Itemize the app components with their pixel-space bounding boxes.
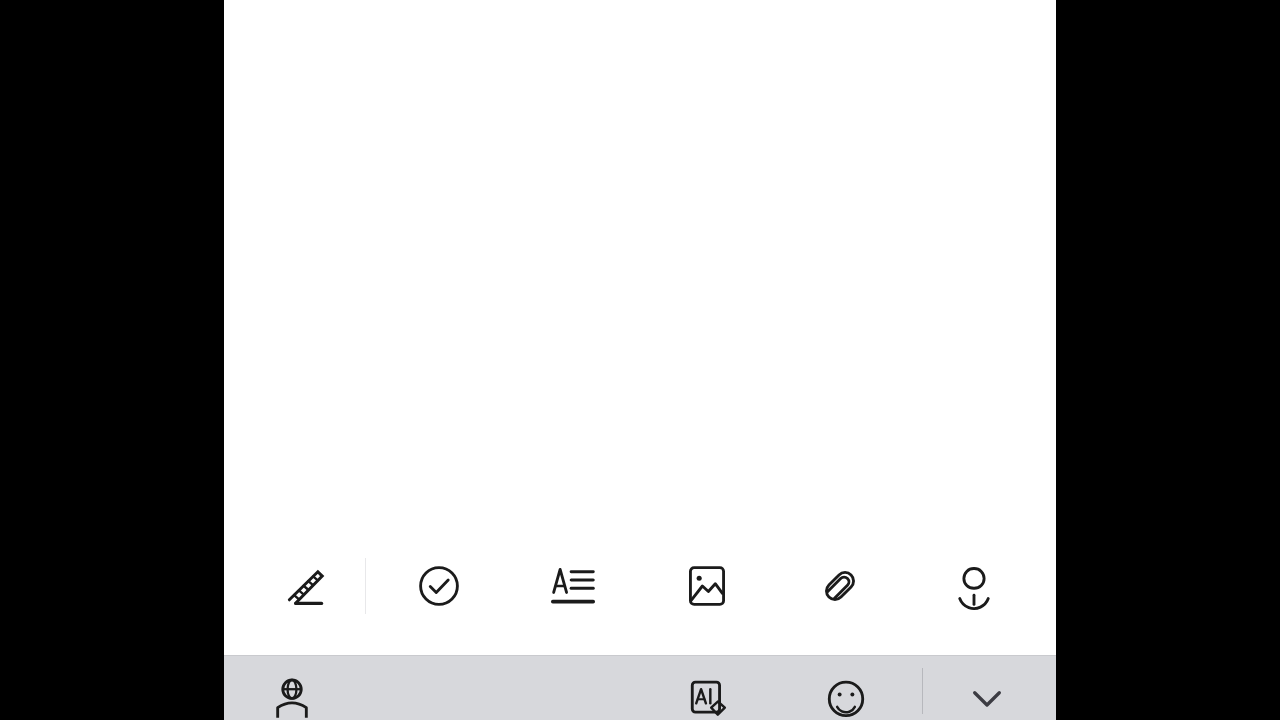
button[interactable]: Attach file: [810, 556, 870, 616]
button[interactable]: Hide keyboard: [961, 672, 1013, 720]
button[interactable]: Emoji: [820, 672, 872, 720]
button[interactable]: Insert picture: [677, 556, 737, 616]
button[interactable]: Ink: [275, 556, 335, 616]
button[interactable]: Language: [266, 672, 318, 720]
button[interactable]: Format text: [543, 556, 603, 616]
button[interactable]: AI translate: [683, 672, 735, 720]
button[interactable]: Tasks: [409, 556, 469, 616]
button[interactable]: Dictate: [944, 556, 1004, 616]
